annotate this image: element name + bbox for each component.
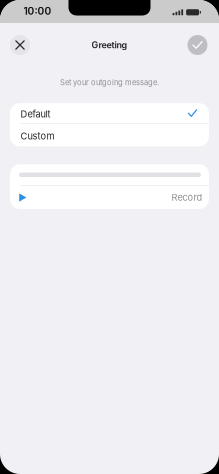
- button[interactable]: Close: [10, 35, 30, 55]
- button[interactable]: Custom: [10, 124, 209, 146]
- staticText: 10:00: [23, 5, 51, 17]
- button[interactable]: Record: [171, 186, 209, 209]
- staticText: Record: [171, 192, 202, 203]
- button[interactable]: Default: [10, 103, 209, 123]
- staticText: Default: [20, 109, 50, 120]
- staticText: Greeting: [91, 40, 127, 50]
- staticText: Custom: [20, 130, 54, 142]
- button[interactable]: Play: [10, 186, 32, 209]
- button[interactable]: Save greeting: [187, 35, 207, 55]
- staticText: Set your outgoing message.: [60, 78, 159, 87]
